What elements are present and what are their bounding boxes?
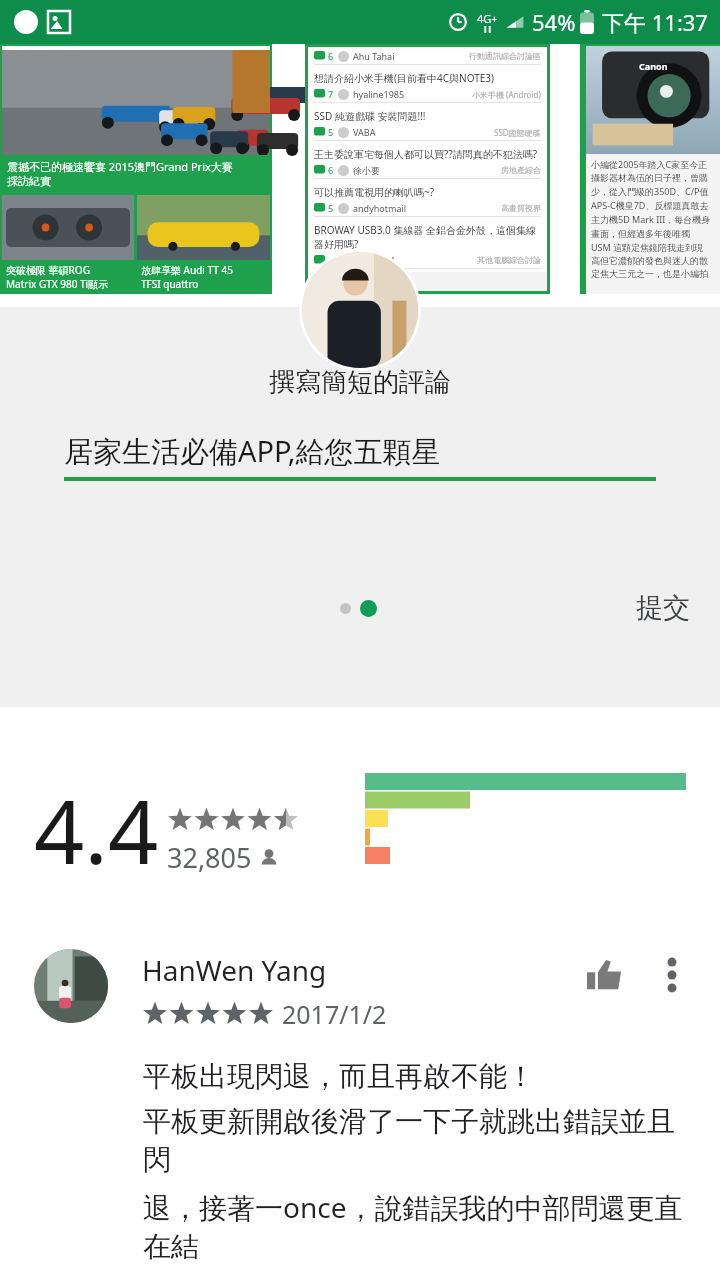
staticText: 5 xyxy=(328,126,334,138)
staticText: SSD 純遊戲碟 安裝問題!!! xyxy=(314,109,426,123)
staticText: SSD固態硬碟 xyxy=(494,127,541,138)
staticText: 採訪紀實 xyxy=(7,174,51,188)
staticText: 下午 11:37 xyxy=(602,7,708,37)
staticText: 畫面，但經過多年後唯獨 Canon EF xyxy=(591,227,715,239)
staticText: 5 xyxy=(328,202,334,214)
button[interactable]: Helpful xyxy=(576,947,632,1003)
staticText: n5998744 xyxy=(353,254,395,266)
staticText: 震撼不已的極速饗宴 2015澳門Grand Prix大賽 xyxy=(7,159,233,174)
staticText: HanWen Yang xyxy=(142,951,327,989)
staticText: 少，從入門級的350D、C/P值破表的 xyxy=(591,185,715,197)
staticText: 突破極限 華碩ROG xyxy=(6,263,90,277)
button[interactable]: HanWen Yang xyxy=(0,947,720,1031)
staticText: hyaline1985 xyxy=(353,88,405,100)
button[interactable]: Screenshot 1 xyxy=(0,44,272,294)
staticText: 王主委說軍宅每個人都可以買??請問真的不犯法嗎? xyxy=(314,147,538,161)
staticText: Matrix GTX 980 Ti顯示 xyxy=(6,277,109,291)
staticText: 放肆享樂 Audi TT 45 xyxy=(141,263,233,277)
staticText: 32,805 xyxy=(167,839,252,876)
staticText: 退，接著一once，說錯誤我的中部問還更直在結 xyxy=(143,1188,696,1265)
staticText: 徐小要 xyxy=(353,165,380,176)
staticText: Ahu Tahai xyxy=(353,50,395,62)
staticText: 4G+ xyxy=(477,11,498,26)
staticText: 7 xyxy=(328,88,334,100)
staticText: 行動通訊綜合討論區 xyxy=(469,51,541,61)
staticText: 可以推薦電視用的喇叭嗎~? xyxy=(314,185,435,199)
staticText: 房地產綜合 xyxy=(501,165,541,175)
button[interactable]: Screenshot 2 xyxy=(305,44,550,294)
button[interactable]: Screenshot 3 xyxy=(580,44,720,294)
staticText: 定焦大三元之一，也是小編拍人專景 xyxy=(591,268,715,279)
button[interactable]: 提交 xyxy=(606,579,720,637)
staticText: 其他電腦綜合討論 xyxy=(477,255,541,265)
staticText: 2017/1/2 xyxy=(282,997,387,1031)
staticText: 平板更新開啟後滑了一下子就跳出錯誤並且閃 xyxy=(143,1104,696,1178)
staticText: 居家生活必備APP,給您五顆星 xyxy=(64,431,441,471)
staticText: 小編從2005年踏入C家至今正好邁向 xyxy=(591,158,715,170)
staticText: TFSI quattro xyxy=(141,277,199,291)
staticText: 小米手機 (Android) xyxy=(472,89,541,100)
staticText: 平板出現閃退，而且再啟不能！ xyxy=(143,1059,535,1094)
staticText: 攝影器材為伍的日子裡，曾購入的機 xyxy=(591,172,715,183)
staticText: andyhotmail xyxy=(353,202,407,214)
button[interactable]: More options xyxy=(644,947,700,1003)
button[interactable]: Your profile photo xyxy=(302,252,418,368)
staticText: 想請介紹小米手機(目前看中4C與NOTE3) xyxy=(314,71,494,85)
staticText: 提交 xyxy=(636,591,690,625)
staticText: 4.4 xyxy=(34,770,159,890)
staticText: USM 這顆定焦鏡陪我走到現在，第 xyxy=(591,241,715,253)
staticText: 6 xyxy=(328,164,334,176)
staticText: 6 xyxy=(328,50,334,62)
staticText: 6 xyxy=(328,254,334,266)
staticText: APS-C機皇7D、反標題真敢去買一代 xyxy=(591,199,715,211)
staticText: 高但它濃郁的發色與迷人的散景依舊 xyxy=(591,255,715,266)
staticText: VABA xyxy=(353,126,376,138)
staticText: Canon xyxy=(639,60,668,72)
staticText: 主力機5D Mark III，每台機身都書為 xyxy=(591,213,715,225)
staticText: BROWAY USB3.0 集線器 全鋁合金外殼，這個集線器好用嗎? xyxy=(314,223,541,251)
staticText: 高畫質視界 xyxy=(501,203,541,213)
staticText: 54% xyxy=(532,7,576,37)
staticText: 撰寫簡短的評論 xyxy=(269,366,451,399)
